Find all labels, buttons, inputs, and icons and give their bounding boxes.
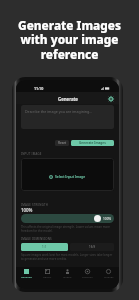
button[interactable]: Settings	[99, 267, 118, 278]
button[interactable]: Settings	[108, 96, 114, 102]
staticText: Settings	[104, 275, 114, 278]
staticText: Gallery	[43, 275, 52, 278]
staticText: 100%	[103, 217, 112, 221]
button[interactable]: 16:9	[70, 243, 114, 251]
staticText: 16:9	[89, 245, 95, 249]
staticText: Generate Images with your image referenc…	[0, 17, 139, 63]
staticText: This affects the original image strength…	[21, 225, 114, 233]
staticText: IMAGE STRENGTH	[21, 203, 49, 207]
staticText: Generate Images	[79, 141, 106, 145]
staticText: Describe the image you are imagining...	[25, 109, 93, 114]
button[interactable]: Reset	[55, 140, 69, 146]
button[interactable]: Favorites	[78, 267, 97, 278]
staticText: Generate	[21, 275, 32, 278]
staticText: Models	[63, 275, 72, 278]
staticText: Favorites	[82, 275, 93, 278]
staticText: Square images work best for most models.…	[21, 253, 114, 261]
staticText: 1:1	[42, 245, 47, 249]
button[interactable]: Models	[58, 267, 77, 278]
button[interactable]: Generate Images	[71, 140, 114, 146]
staticText: 11:10	[34, 86, 44, 91]
staticText: IMAGE DIMENSIONS	[21, 237, 52, 241]
button[interactable]: Describe the image you are imagining...	[21, 105, 114, 129]
button[interactable]: Gallery	[38, 267, 57, 278]
staticText: 100%	[21, 207, 33, 213]
staticText: Generate	[58, 96, 78, 102]
button[interactable]: 1:1	[21, 243, 68, 251]
staticText: INPUT IMAGE	[21, 152, 42, 156]
staticText: Select Input Image	[55, 174, 86, 179]
button[interactable]: Strength slider	[21, 214, 114, 223]
button[interactable]: Select Input Image	[21, 158, 114, 191]
button[interactable]: Generate	[17, 267, 36, 278]
staticText: Reset	[58, 141, 67, 145]
